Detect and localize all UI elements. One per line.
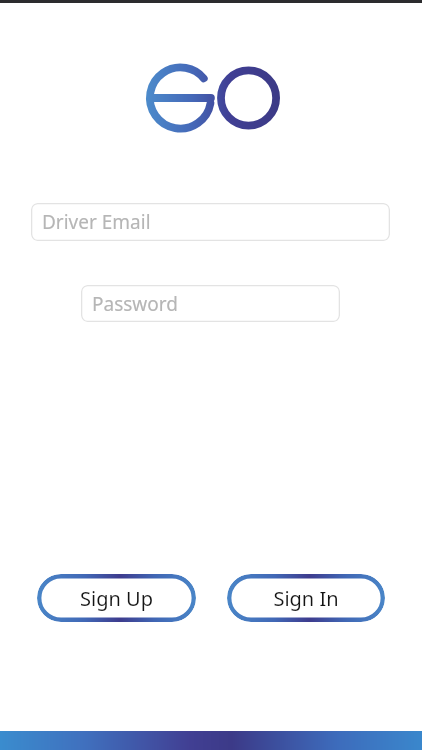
other: eo logo (146, 61, 280, 135)
button[interactable]: Sign In (227, 574, 385, 622)
staticText: Password (92, 291, 178, 317)
button[interactable]: Sign Up (37, 574, 196, 622)
button[interactable]: Password (81, 285, 340, 322)
button[interactable]: Driver Email (31, 203, 390, 241)
staticText: Sign In (273, 585, 339, 612)
staticText: Driver Email (42, 209, 151, 235)
staticText: Sign Up (80, 585, 153, 612)
